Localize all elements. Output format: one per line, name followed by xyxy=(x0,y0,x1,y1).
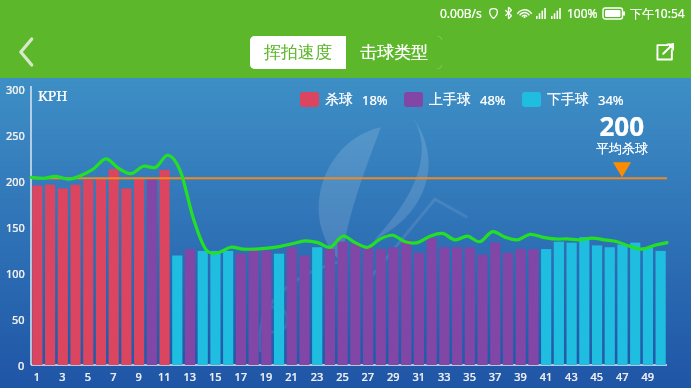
staticText: 下午10:54 xyxy=(630,5,685,21)
staticText: 100% xyxy=(567,5,598,21)
staticText: 击球类型 xyxy=(360,42,428,63)
button[interactable]: Back xyxy=(0,26,52,78)
button[interactable]: 击球类型 xyxy=(346,36,442,69)
button[interactable]: Share xyxy=(639,26,691,78)
button[interactable]: 挥拍速度 xyxy=(250,36,346,69)
staticText: 0.00B/s xyxy=(440,5,482,21)
staticText: 挥拍速度 xyxy=(264,42,332,63)
